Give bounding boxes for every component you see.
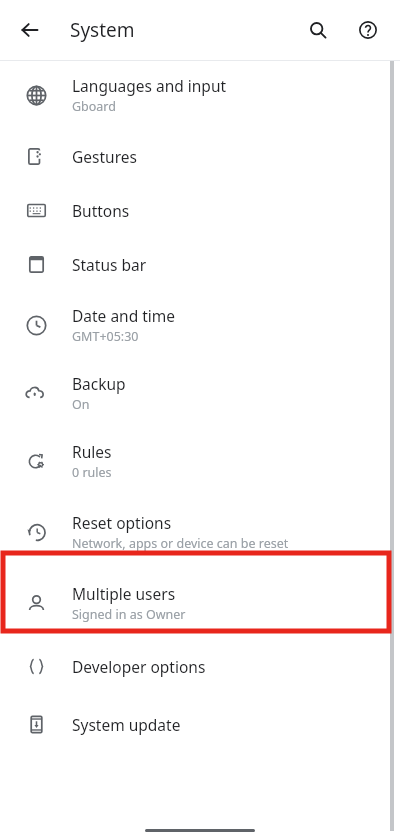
staticText: 0 rules bbox=[72, 464, 112, 481]
button[interactable]: Date and time bbox=[0, 291, 400, 359]
button[interactable]: Multiple users bbox=[0, 569, 400, 637]
staticText: Network, apps or device can be reset bbox=[72, 535, 289, 552]
staticText: On bbox=[72, 396, 90, 413]
staticText: Buttons bbox=[72, 200, 130, 221]
button[interactable]: Developer options bbox=[0, 637, 400, 695]
staticText: Gboard bbox=[72, 98, 116, 115]
staticText: Status bar bbox=[72, 254, 147, 275]
staticText: Multiple users bbox=[72, 583, 176, 604]
staticText: Rules bbox=[72, 441, 112, 462]
button[interactable]: Help bbox=[346, 8, 390, 52]
button[interactable]: System update bbox=[0, 695, 400, 753]
staticText: Developer options bbox=[72, 656, 206, 677]
button[interactable]: Buttons bbox=[0, 183, 400, 237]
staticText: Languages and input bbox=[72, 75, 227, 96]
button[interactable]: Gestures bbox=[0, 129, 400, 183]
button[interactable]: Back bbox=[8, 8, 52, 52]
staticText: System update bbox=[72, 714, 181, 735]
staticText: Date and time bbox=[72, 305, 176, 326]
button[interactable]: Backup bbox=[0, 359, 400, 427]
button[interactable]: Reset options bbox=[0, 495, 400, 569]
button[interactable]: Rules bbox=[0, 427, 400, 495]
staticText: GMT+05:30 bbox=[72, 328, 139, 345]
staticText: Gestures bbox=[72, 146, 137, 167]
staticText: System bbox=[70, 17, 135, 43]
staticText: Signed in as Owner bbox=[72, 606, 186, 623]
staticText: Reset options bbox=[72, 512, 172, 533]
button[interactable]: Status bar bbox=[0, 237, 400, 291]
staticText: Backup bbox=[72, 373, 126, 394]
button[interactable]: Search bbox=[296, 8, 340, 52]
button[interactable]: Languages and input bbox=[0, 61, 400, 129]
